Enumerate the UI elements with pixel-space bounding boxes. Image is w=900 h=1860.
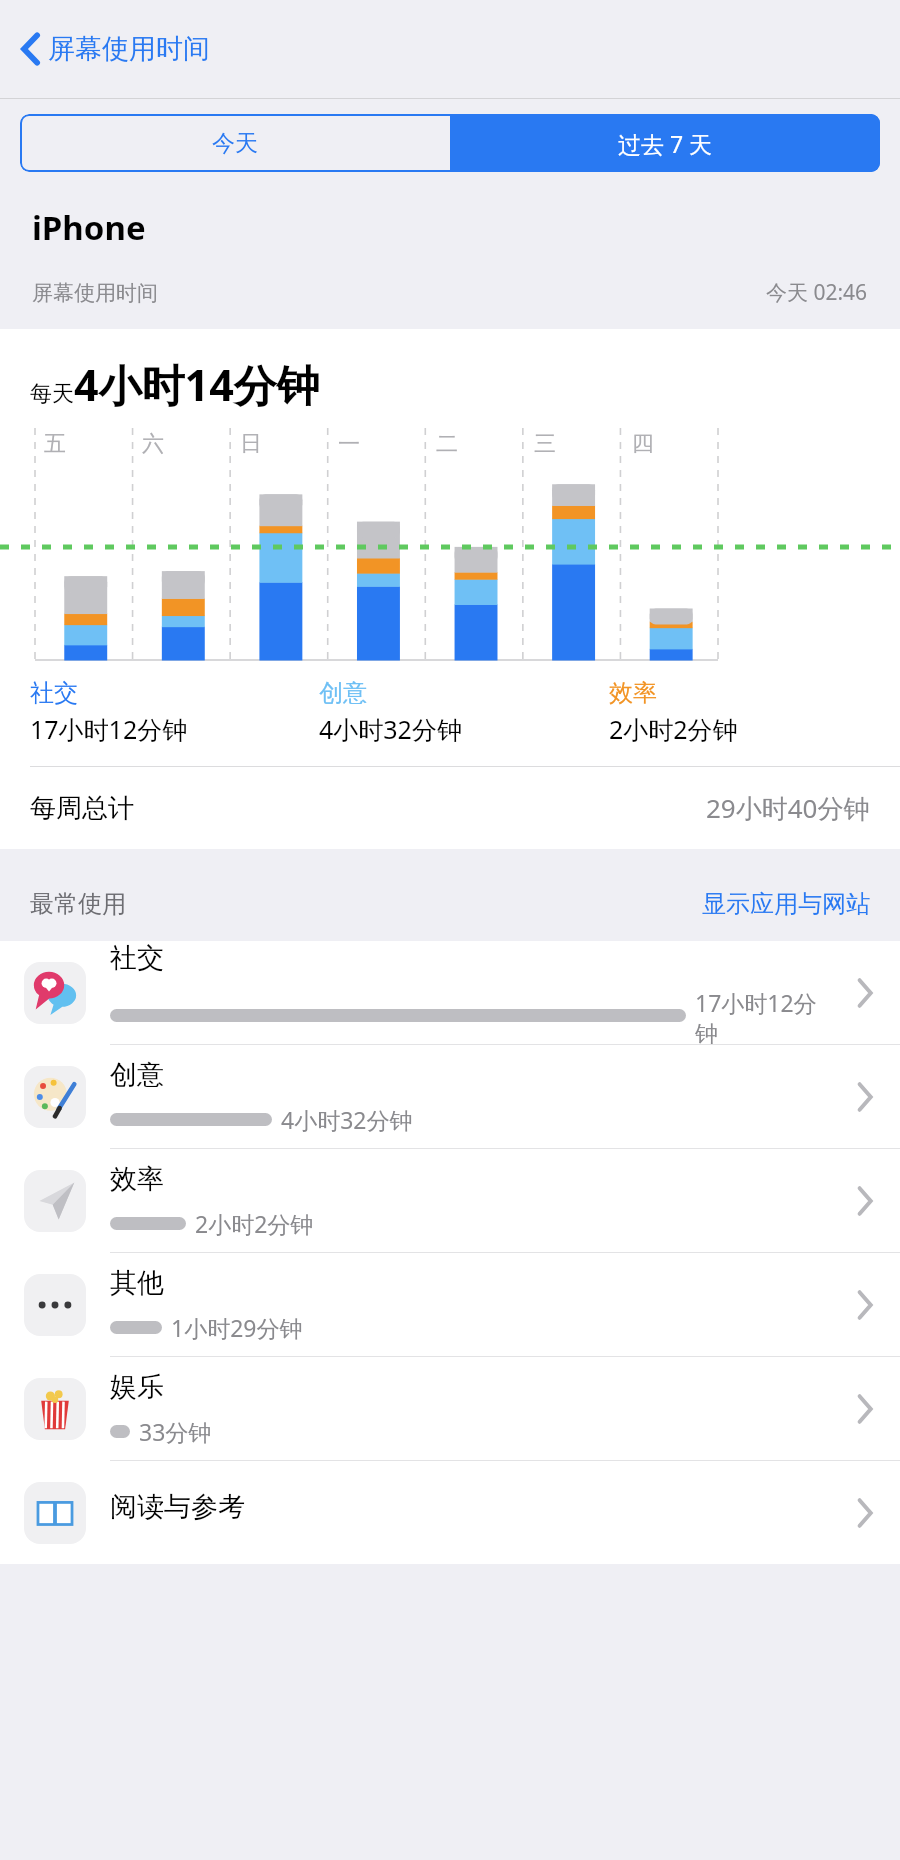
staticText: 17小时12分钟 — [695, 987, 830, 1044]
staticText: 社交 — [110, 941, 164, 975]
staticText: 日 — [240, 430, 262, 458]
other: Open 其他 — [830, 1253, 900, 1356]
staticText: 效率 — [609, 678, 657, 708]
staticText: 娱乐 — [110, 1370, 164, 1404]
other: Open 社交 — [830, 941, 900, 1044]
staticText: 五 — [44, 430, 66, 458]
staticText: 过去 7 天 — [618, 128, 713, 159]
staticText: 六 — [142, 430, 164, 458]
staticText: 一 — [338, 430, 360, 458]
staticText: 创意 — [319, 678, 367, 708]
button[interactable]: 每周总计 — [0, 767, 900, 849]
staticText: 1小时29分钟 — [171, 1312, 303, 1343]
button[interactable]: 其他 — [0, 1253, 900, 1356]
button[interactable]: 显示应用与网站 — [702, 889, 870, 919]
staticText: 33分钟 — [139, 1416, 212, 1447]
button[interactable]: 今天 — [20, 114, 450, 172]
button[interactable]: 效率 — [0, 1149, 900, 1252]
other: Open 阅读与参考 — [830, 1461, 900, 1564]
staticText: iPhone — [32, 205, 146, 250]
staticText: 阅读与参考 — [110, 1490, 245, 1524]
staticText: 4小时32分钟 — [319, 712, 462, 746]
staticText: 29小时40分钟 — [706, 790, 870, 826]
staticText: 每周总计 — [30, 792, 134, 825]
staticText: 三 — [534, 430, 556, 458]
other: Open 创意 — [830, 1045, 900, 1148]
button[interactable]: 阅读与参考 — [0, 1461, 900, 1564]
other: Open 效率 — [830, 1149, 900, 1252]
staticText: 今天 02:46 — [766, 278, 868, 307]
staticText: 4小时14分钟 — [74, 355, 320, 414]
staticText: 其他 — [110, 1266, 164, 1300]
staticText: 17小时12分钟 — [30, 712, 188, 746]
other: Open 娱乐 — [830, 1357, 900, 1460]
staticText: 屏幕使用时间 — [32, 280, 158, 306]
staticText: 每天 — [30, 380, 74, 408]
staticText: 社交 — [30, 678, 78, 708]
staticText: 四 — [632, 430, 654, 458]
staticText: 2小时2分钟 — [195, 1208, 314, 1239]
staticText: 屏幕使用时间 — [48, 32, 210, 66]
staticText: 显示应用与网站 — [702, 889, 870, 919]
button[interactable]: 过去 7 天 — [450, 114, 880, 172]
staticText: 效率 — [110, 1162, 164, 1196]
button[interactable]: 社交 — [0, 941, 900, 1044]
staticText: 二 — [436, 430, 458, 458]
staticText: 4小时32分钟 — [281, 1104, 413, 1135]
staticText: 今天 — [212, 129, 258, 158]
button[interactable]: 娱乐 — [0, 1357, 900, 1460]
button[interactable]: 创意 — [0, 1045, 900, 1148]
staticText: 创意 — [110, 1058, 164, 1092]
staticText: 最常使用 — [30, 889, 126, 919]
button[interactable]: 屏幕使用时间 — [14, 25, 216, 73]
staticText: 2小时2分钟 — [609, 712, 738, 746]
